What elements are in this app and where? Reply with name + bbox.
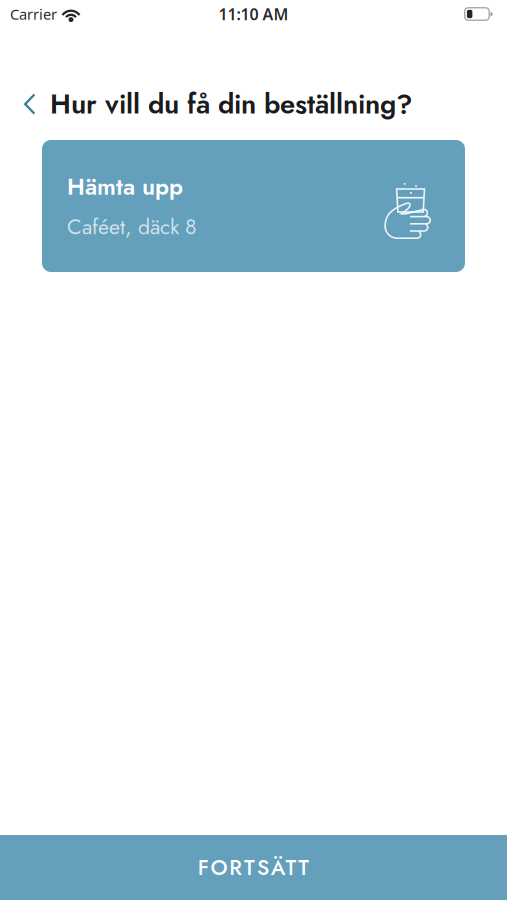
staticText: Hämta upp <box>67 170 183 203</box>
staticText: Caféet, däck 8 <box>67 211 197 242</box>
button[interactable]: FORTSÄTT <box>0 835 507 900</box>
staticText: 11:10 AM <box>218 3 288 25</box>
staticText: Carrier <box>10 4 57 24</box>
staticText: FORTSÄTT <box>198 852 309 883</box>
button[interactable]: Back <box>12 86 48 122</box>
staticText: Hur vill du få din beställning? <box>50 84 413 124</box>
button[interactable]: Hämta upp <box>42 140 465 272</box>
